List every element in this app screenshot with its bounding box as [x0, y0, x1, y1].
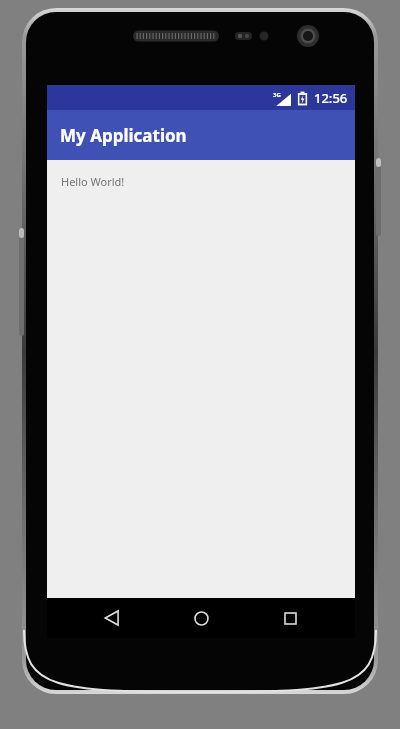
button[interactable]: Recent apps [266, 598, 314, 638]
staticText: Hello World! [61, 174, 125, 189]
button[interactable]: My Application [47, 110, 355, 160]
staticText: 3G [273, 91, 281, 99]
staticText: My Application [60, 124, 187, 147]
button[interactable]: Back [88, 598, 136, 638]
staticText: 12:56 [314, 89, 348, 107]
button[interactable]: Home [177, 598, 225, 638]
